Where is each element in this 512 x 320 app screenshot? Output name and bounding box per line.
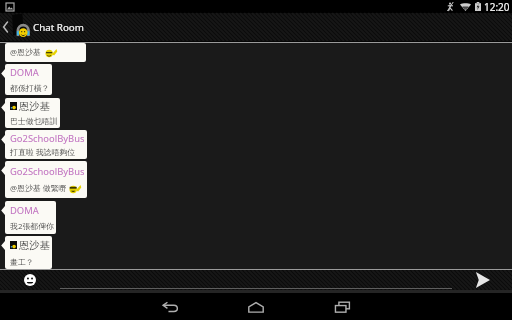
staticText: @恩沙基 做緊嘢	[10, 183, 67, 194]
staticText: DOMA	[10, 66, 39, 79]
button[interactable]: Insert emoji	[0, 270, 60, 290]
button[interactable]: DOMA	[5, 64, 52, 95]
staticText: 恩沙基	[19, 239, 50, 252]
button[interactable]: DOMA	[5, 201, 56, 234]
staticText: 12:20	[484, 0, 510, 13]
staticText: 畫工？	[10, 257, 34, 267]
staticText: Go2SchoolByBus	[10, 165, 85, 178]
staticText: Chat Room	[33, 21, 84, 34]
staticText: @恩沙基	[10, 47, 43, 58]
button[interactable]: Recent apps	[299, 294, 385, 320]
button[interactable]: @恩沙基	[5, 43, 86, 62]
button[interactable]: Send	[452, 270, 512, 290]
staticText: 打直啦 我諗唔夠位	[10, 147, 76, 158]
button[interactable]: Go2SchoolByBus	[5, 130, 87, 159]
button[interactable]: Back	[127, 294, 213, 320]
button[interactable]: 恩沙基	[5, 98, 60, 128]
staticText: 恩沙基	[19, 100, 50, 113]
staticText: DOMA	[10, 204, 39, 217]
staticText: 我2張都俾你	[10, 221, 54, 232]
button[interactable]: Home	[213, 294, 299, 320]
button[interactable]: Navigate up	[0, 13, 10, 41]
staticText: 巴士做乜唔訓	[10, 116, 58, 126]
button[interactable]: Go2SchoolByBus	[5, 161, 87, 198]
button[interactable]: 恩沙基	[5, 236, 52, 269]
staticText: 都係打橫？	[10, 83, 50, 93]
staticText: Go2SchoolByBus	[10, 132, 85, 145]
